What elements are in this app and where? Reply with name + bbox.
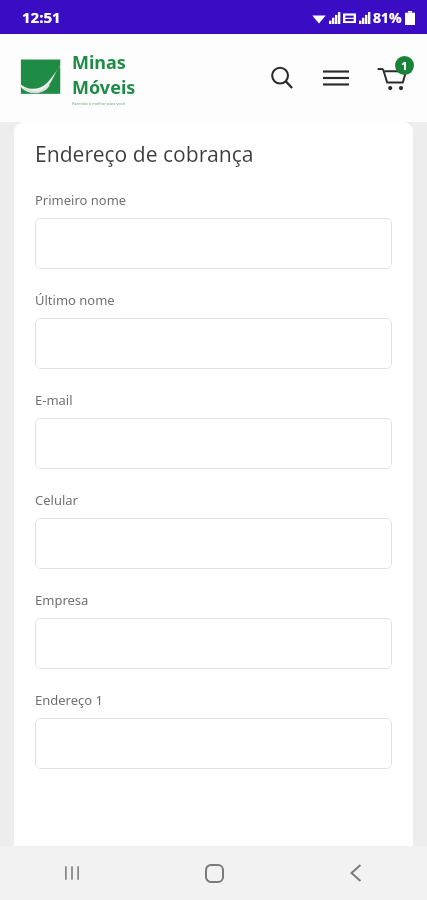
staticText: Endereço 1 [35,691,103,709]
button[interactable]: Celular [35,518,392,569]
button[interactable]: Minas Móveis home [18,50,136,106]
staticText: Último nome [35,291,115,309]
staticText: Fazendo o melhor para você [72,101,126,106]
button[interactable]: Home [143,846,285,900]
button[interactable]: Menu [317,59,355,97]
staticText: Minas [72,50,126,75]
staticText: Móveis [72,75,136,100]
staticText: 1 [401,58,408,73]
staticText: Celular [35,491,78,509]
button[interactable]: Empresa [35,618,392,669]
button[interactable]: Endereço 1 [35,718,392,769]
button[interactable]: Search [263,59,301,97]
staticText: Endereço de cobrança [35,140,254,169]
staticText: E-mail [35,391,73,409]
staticText: 12:51 [22,7,61,27]
staticText: 81% [373,8,402,27]
button[interactable]: Último nome [35,318,392,369]
staticText: Primeiro nome [35,191,127,209]
button[interactable]: Cart, 1 item [371,57,413,99]
button[interactable]: Back [285,846,427,900]
button[interactable]: Primeiro nome [35,218,392,269]
button[interactable]: E-mail [35,418,392,469]
button[interactable]: Recent apps [0,846,143,900]
staticText: Empresa [35,591,89,609]
